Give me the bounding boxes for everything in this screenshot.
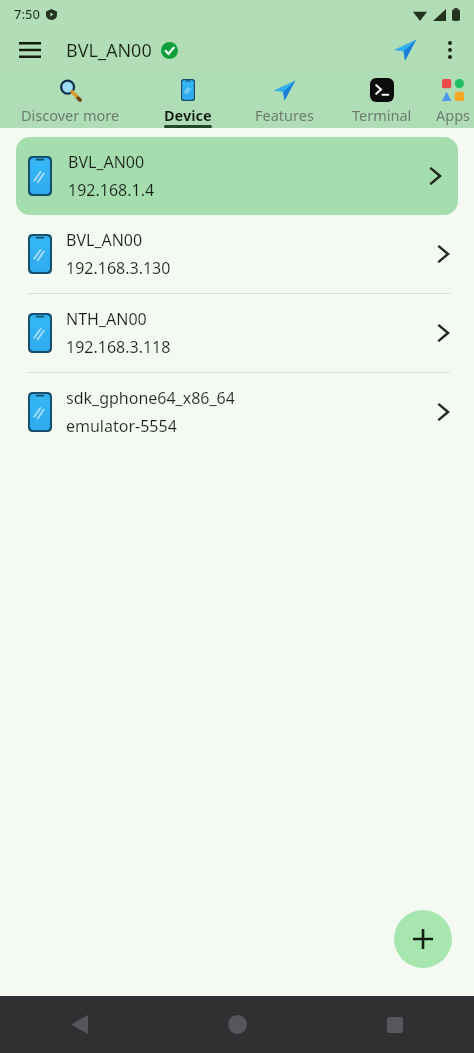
button[interactable]: Open navigation menu: [10, 30, 50, 70]
button[interactable]: More options: [430, 30, 470, 70]
staticText: Apps: [436, 105, 471, 125]
staticText: 192.168.3.118: [66, 336, 171, 358]
button[interactable]: Add device: [394, 910, 452, 968]
button[interactable]: Features: [236, 72, 332, 128]
button[interactable]: Back: [0, 996, 158, 1053]
staticText: 192.168.3.130: [66, 257, 171, 279]
staticText: BVL_AN00: [66, 38, 152, 63]
staticText: Terminal: [352, 105, 412, 125]
button[interactable]: BVL_AN00: [0, 215, 474, 293]
button[interactable]: NTH_AN00: [0, 294, 474, 372]
staticText: Device: [164, 105, 212, 125]
staticText: sdk_gphone64_x86_64: [66, 387, 235, 409]
staticText: Discover more: [21, 105, 120, 125]
button[interactable]: Recent apps: [316, 996, 474, 1053]
staticText: Features: [255, 105, 314, 125]
button[interactable]: Discover more: [0, 72, 140, 128]
staticText: BVL_AN00: [68, 151, 145, 173]
staticText: emulator-5554: [66, 415, 177, 437]
button[interactable]: sdk_gphone64_x86_64: [0, 373, 474, 451]
button[interactable]: Home: [158, 996, 316, 1053]
button[interactable]: Apps: [432, 72, 474, 128]
button[interactable]: Device: [140, 72, 236, 128]
staticText: BVL_AN00: [66, 229, 143, 251]
staticText: 192.168.1.4: [68, 179, 155, 201]
button[interactable]: BVL_AN00: [16, 137, 458, 215]
button[interactable]: Terminal: [332, 72, 432, 128]
staticText: NTH_AN00: [66, 308, 147, 330]
staticText: 7:50: [14, 5, 40, 23]
button[interactable]: Send: [384, 29, 426, 71]
